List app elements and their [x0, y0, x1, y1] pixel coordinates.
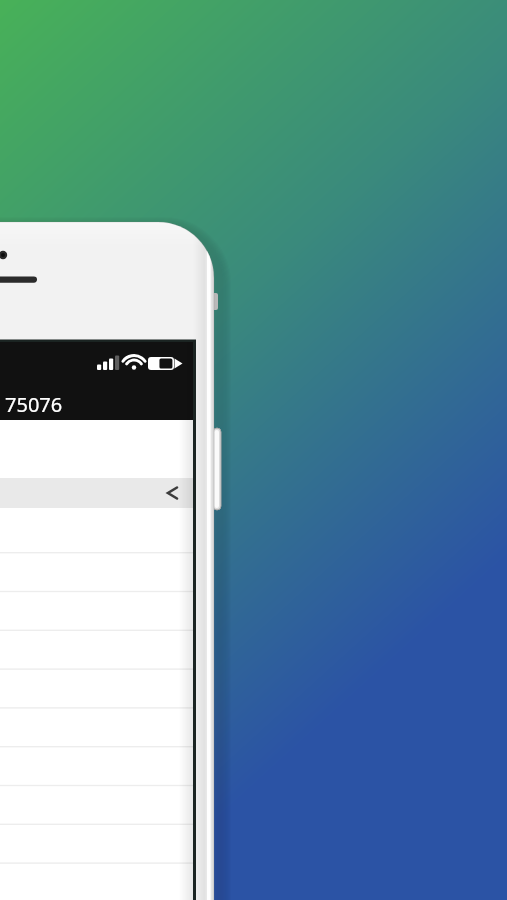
button[interactable]: List item 11	[0, 882, 193, 900]
button[interactable]: List item 11	[0, 533, 193, 572]
button[interactable]: List item 11	[0, 688, 193, 727]
button[interactable]: List item 11	[0, 843, 193, 882]
button[interactable]: List item 11	[0, 649, 193, 688]
button[interactable]: Collapse section	[0, 478, 193, 508]
button[interactable]: List item 11	[0, 611, 193, 650]
button[interactable]: Power	[213, 428, 223, 510]
button[interactable]: List item 11	[0, 766, 193, 805]
button[interactable]: List item 11	[0, 572, 193, 611]
button[interactable]: List item 11	[0, 727, 193, 766]
button[interactable]: List item 11	[0, 805, 193, 844]
